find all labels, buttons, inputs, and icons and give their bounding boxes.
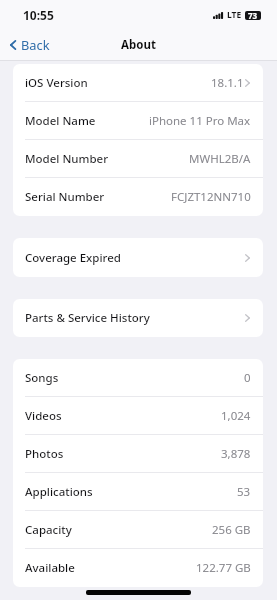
staticText: 122.77 GB (196, 560, 251, 576)
staticText: Parts & Service History (25, 310, 150, 326)
button[interactable]: Serial Number (13, 178, 263, 216)
staticText: 10:55 (23, 7, 54, 23)
button[interactable]: Applications (13, 473, 263, 511)
button[interactable]: Songs (13, 359, 263, 397)
staticText: Model Name (25, 113, 96, 129)
staticText: Coverage Expired (25, 250, 121, 266)
staticText: Applications (25, 484, 93, 500)
staticText: MWHL2B/A (189, 151, 251, 167)
staticText: 3,878 (221, 446, 251, 462)
staticText: About (121, 37, 156, 53)
staticText: Back (21, 36, 50, 53)
button[interactable]: Parts & Service History (13, 299, 263, 337)
staticText: 73 (248, 10, 258, 21)
staticText: Available (25, 560, 75, 576)
staticText: Model Number (25, 151, 109, 167)
button[interactable]: Available (13, 549, 263, 587)
button[interactable]: Photos (13, 435, 263, 473)
staticText: FCJZT12NN710 (171, 189, 251, 205)
staticText: Videos (25, 408, 62, 424)
staticText: Serial Number (25, 189, 105, 205)
button[interactable]: Back (0, 31, 58, 58)
staticText: LTE (227, 9, 242, 21)
staticText: 0 (244, 370, 251, 386)
staticText: iPhone 11 Pro Max (149, 113, 251, 129)
button[interactable]: Model Name (13, 102, 263, 140)
button[interactable]: Coverage Expired (13, 238, 263, 277)
button[interactable]: Model Number (13, 140, 263, 178)
staticText: 53 (237, 484, 251, 500)
staticText: 18.1.1 (211, 75, 244, 91)
staticText: Songs (25, 370, 59, 386)
staticText: iOS Version (25, 75, 88, 91)
button[interactable]: iOS Version (13, 64, 263, 102)
staticText: 256 GB (212, 522, 251, 538)
staticText: Photos (25, 446, 64, 462)
button[interactable]: Videos (13, 397, 263, 435)
staticText: Capacity (25, 522, 72, 538)
button[interactable]: Capacity (13, 511, 263, 549)
staticText: 1,024 (221, 408, 251, 424)
